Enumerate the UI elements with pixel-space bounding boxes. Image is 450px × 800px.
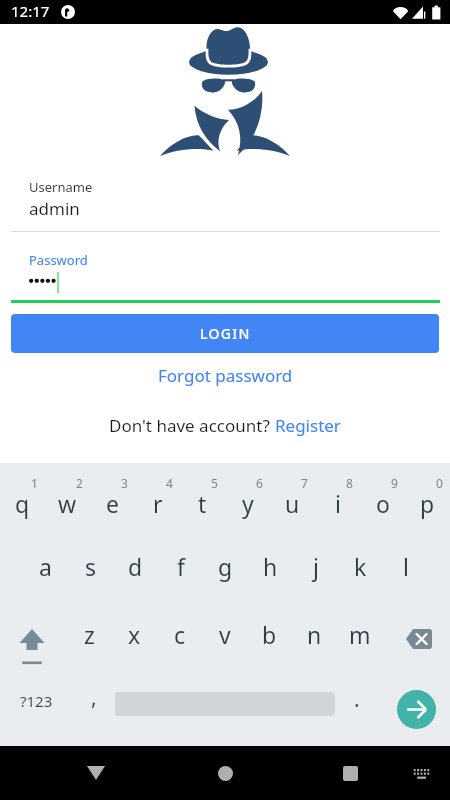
button[interactable]: 2 bbox=[45, 463, 90, 531]
staticText: y bbox=[242, 488, 254, 519]
staticText: 0 bbox=[436, 475, 443, 491]
button[interactable]: Register bbox=[275, 414, 341, 437]
button[interactable]: Recents bbox=[334, 746, 366, 800]
button[interactable]: Home bbox=[209, 746, 241, 800]
button[interactable]: b bbox=[247, 599, 292, 667]
button[interactable]: z bbox=[67, 599, 112, 667]
button[interactable]: LOGIN bbox=[11, 314, 439, 353]
button[interactable]: a bbox=[23, 531, 68, 599]
button[interactable]: j bbox=[293, 531, 338, 599]
button[interactable]: ?123 bbox=[0, 667, 72, 735]
staticText: v bbox=[219, 619, 231, 650]
button[interactable]: Backspace bbox=[382, 599, 450, 667]
staticText: k bbox=[354, 551, 367, 582]
staticText: . bbox=[354, 685, 360, 714]
staticText: 2 bbox=[76, 475, 83, 491]
staticText: o bbox=[376, 488, 390, 519]
staticText: x bbox=[128, 619, 141, 650]
button[interactable]: Forgot password bbox=[150, 361, 301, 390]
staticText: z bbox=[84, 619, 95, 650]
staticText: t bbox=[198, 488, 207, 519]
button[interactable]: , bbox=[72, 667, 115, 735]
staticText: 12:17 bbox=[11, 1, 50, 21]
button[interactable]: l bbox=[383, 531, 428, 599]
button[interactable]: Shift bbox=[0, 599, 67, 667]
button[interactable]: d bbox=[113, 531, 158, 599]
staticText: 1 bbox=[31, 475, 38, 491]
button[interactable]: x bbox=[112, 599, 157, 667]
staticText: i bbox=[335, 488, 341, 519]
button[interactable]: 6 bbox=[225, 463, 270, 531]
staticText: l bbox=[403, 551, 409, 582]
staticText: c bbox=[174, 619, 186, 650]
staticText: 6 bbox=[256, 475, 263, 491]
staticText: h bbox=[263, 551, 278, 582]
staticText: Register bbox=[275, 414, 341, 437]
button[interactable]: s bbox=[68, 531, 113, 599]
button[interactable]: Enter bbox=[378, 667, 450, 735]
staticText: 7 bbox=[301, 475, 308, 491]
staticText: j bbox=[313, 551, 319, 582]
staticText: w bbox=[58, 488, 77, 519]
staticText: r bbox=[153, 488, 163, 519]
staticText: ?123 bbox=[20, 691, 53, 711]
staticText: e bbox=[106, 488, 119, 519]
staticText: b bbox=[262, 619, 277, 650]
staticText: n bbox=[307, 619, 322, 650]
staticText: 8 bbox=[346, 475, 353, 491]
staticText: admin bbox=[29, 197, 80, 220]
other: Keyboard active bbox=[403, 746, 435, 800]
staticText: 3 bbox=[121, 475, 128, 491]
button[interactable]: 8 bbox=[315, 463, 360, 531]
staticText: u bbox=[285, 488, 300, 519]
button[interactable]: . bbox=[335, 667, 378, 735]
staticText: , bbox=[91, 683, 97, 712]
button[interactable]: g bbox=[203, 531, 248, 599]
button[interactable]: 3 bbox=[90, 463, 135, 531]
staticText: 9 bbox=[391, 475, 398, 491]
staticText: LOGIN bbox=[200, 324, 251, 343]
button[interactable]: 9 bbox=[360, 463, 405, 531]
staticText: d bbox=[128, 551, 143, 582]
staticText: s bbox=[85, 551, 97, 582]
staticText: p bbox=[420, 488, 435, 519]
button[interactable]: 5 bbox=[180, 463, 225, 531]
staticText: Password bbox=[29, 251, 88, 269]
staticText: Forgot password bbox=[158, 364, 293, 387]
button[interactable]: 1 bbox=[0, 463, 45, 531]
staticText: m bbox=[349, 619, 371, 650]
button[interactable]: h bbox=[248, 531, 293, 599]
staticText: f bbox=[177, 551, 185, 582]
button[interactable]: n bbox=[292, 599, 337, 667]
staticText: 4 bbox=[166, 475, 173, 491]
staticText: g bbox=[218, 551, 233, 582]
button[interactable]: f bbox=[158, 531, 203, 599]
button[interactable]: 7 bbox=[270, 463, 315, 531]
staticText: Username bbox=[29, 178, 93, 196]
button[interactable]: c bbox=[157, 599, 202, 667]
button[interactable]: 4 bbox=[135, 463, 180, 531]
button[interactable]: m bbox=[337, 599, 382, 667]
button[interactable]: Space bbox=[115, 667, 335, 735]
button[interactable]: Back bbox=[80, 746, 112, 800]
button[interactable]: v bbox=[202, 599, 247, 667]
staticText: 5 bbox=[211, 475, 218, 491]
button[interactable]: k bbox=[338, 531, 383, 599]
button[interactable]: 0 bbox=[405, 463, 450, 531]
staticText: q bbox=[15, 488, 30, 519]
staticText: a bbox=[39, 551, 52, 582]
staticText: Don't have account? bbox=[109, 414, 275, 437]
